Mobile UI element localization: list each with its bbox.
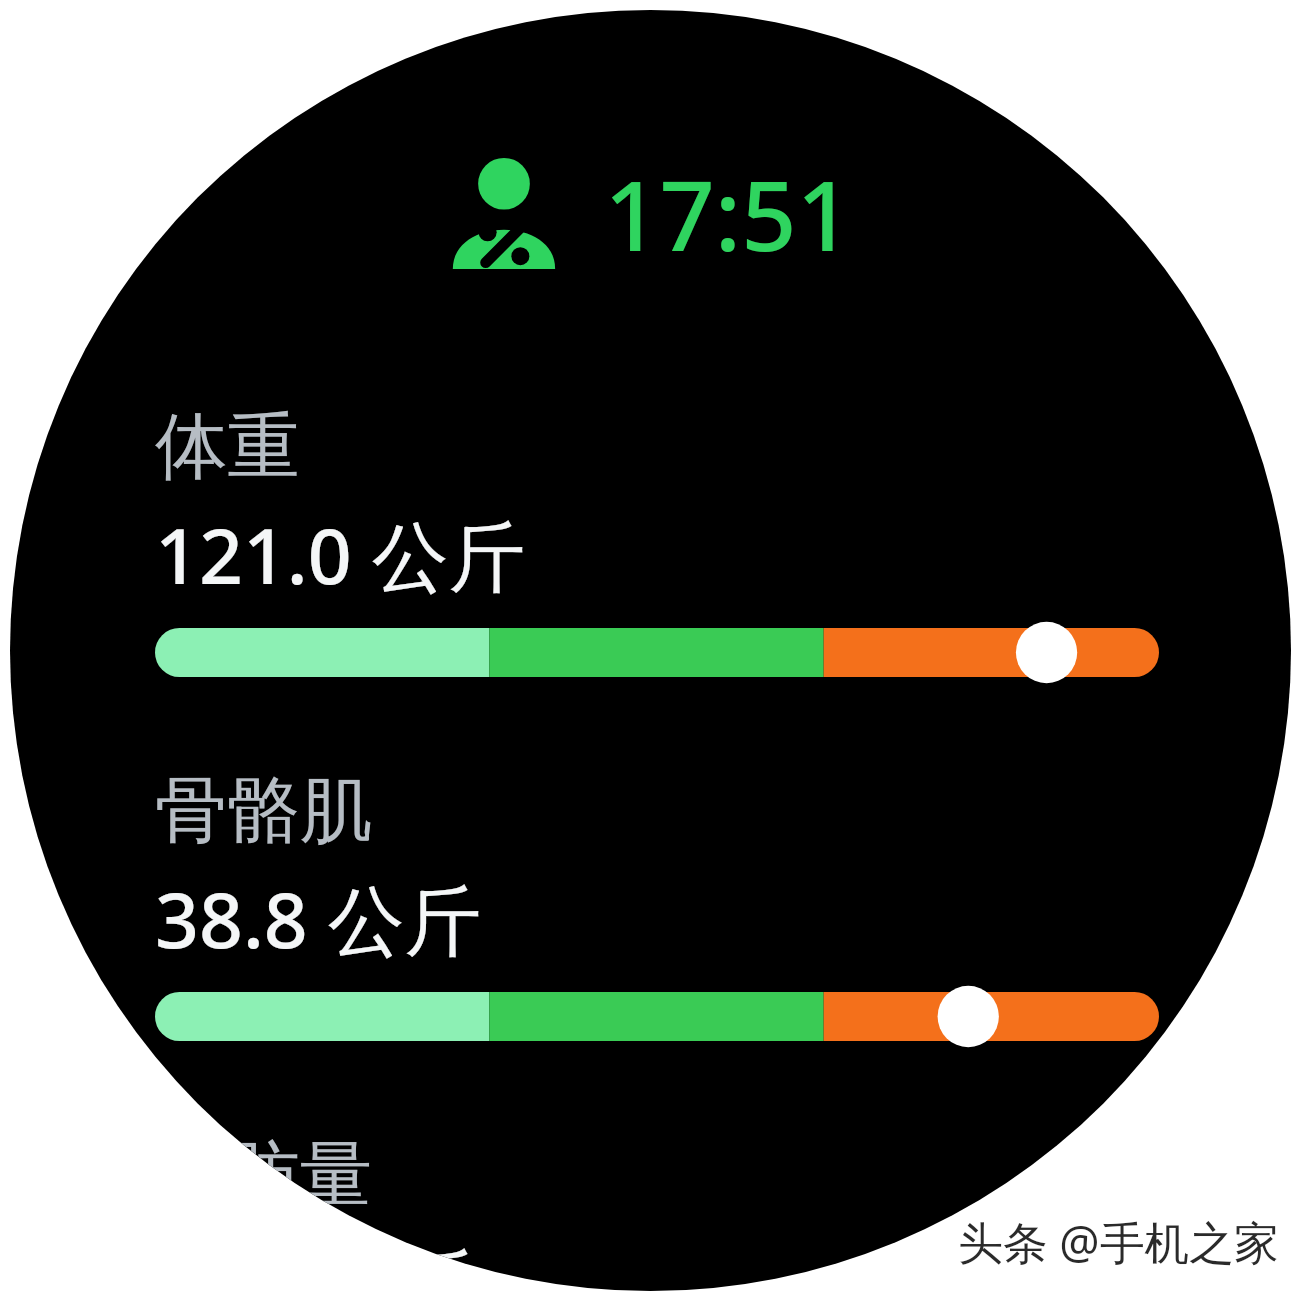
staticText: 82.2 公斤 (155, 1230, 482, 1291)
button[interactable]: 体重 (155, 401, 1159, 684)
staticText: 38.8 公斤 (155, 866, 482, 971)
button[interactable]: Body composition, 17:51 (449, 148, 852, 280)
staticText: 体重 (155, 401, 300, 492)
staticText: 121.0 公斤 (155, 502, 526, 607)
staticText: 头条 @手机之家 (958, 1211, 1280, 1272)
staticText: 脂肪量 (155, 1129, 373, 1220)
staticText: 17:51 (604, 148, 852, 280)
button[interactable]: 骨骼肌 (155, 765, 1159, 1048)
other: Body composition (449, 159, 559, 269)
button[interactable]: 脂肪量 (155, 1129, 1159, 1291)
staticText: 骨骼肌 (155, 765, 373, 856)
